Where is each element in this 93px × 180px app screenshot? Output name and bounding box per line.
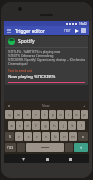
button[interactable]: c: [33, 132, 41, 141]
staticText: 16:42: [79, 22, 87, 26]
staticText: h: [53, 123, 56, 128]
staticText: <: [80, 145, 83, 150]
button[interactable]: e: [23, 110, 31, 119]
button[interactable]: TEST: [64, 29, 71, 33]
staticText: z: [18, 134, 20, 139]
button[interactable]: l: [77, 121, 85, 130]
button[interactable]: Back: [19, 155, 27, 163]
staticText: TEST: [64, 29, 71, 33]
staticText: Now playing %TICKER%: [8, 74, 56, 80]
button[interactable]: h: [50, 121, 58, 130]
button[interactable]: Space: [26, 143, 64, 152]
staticText: %TITLE% - %ARTIST% is playing now: [8, 50, 85, 54]
button[interactable]: m: [69, 132, 77, 141]
staticText: o: [75, 112, 78, 117]
button[interactable]: y: [49, 110, 56, 119]
button[interactable]: Home: [43, 155, 51, 163]
staticText: v: [45, 134, 47, 139]
staticText: c: [36, 134, 38, 139]
staticText: Trigger editor: [15, 28, 45, 34]
staticText: n: [63, 134, 66, 139]
button[interactable]: Now playing %TICKER%: [8, 74, 85, 83]
staticText: u: [59, 112, 62, 117]
button[interactable]: ?123: [5, 143, 16, 152]
staticText: d: [26, 123, 29, 128]
staticText: l: [81, 123, 82, 128]
button[interactable]: j: [59, 121, 67, 130]
staticText: w: [17, 112, 20, 117]
button[interactable]: Shift: [5, 132, 14, 141]
button[interactable]: Voice input: [6, 103, 11, 108]
button[interactable]: Enter: [74, 143, 88, 152]
staticText: f: [35, 123, 37, 128]
staticText: j: [63, 123, 64, 128]
staticText: Text to send out: [8, 69, 32, 73]
button[interactable]: z: [15, 132, 23, 141]
button[interactable]: b: [51, 132, 59, 141]
button[interactable]: Recents: [66, 155, 74, 163]
button[interactable]: Spotify: [5, 36, 88, 47]
button[interactable]: Run: [73, 27, 80, 34]
staticText: i: [68, 112, 69, 117]
staticText: S: [9, 134, 11, 139]
button[interactable]: u: [57, 110, 64, 119]
button[interactable]: t: [41, 110, 48, 119]
staticText: %TICKER% (Spotify) Ograniczony dostep --…: [8, 58, 85, 66]
button[interactable]: Navigation menu: [6, 28, 12, 34]
staticText: x: [82, 134, 84, 139]
button[interactable]: Save: [80, 27, 87, 34]
button[interactable]: p: [81, 110, 88, 119]
staticText: Now: [42, 103, 50, 108]
staticText: q: [8, 112, 11, 117]
button[interactable]: Backspace: [78, 132, 88, 141]
button[interactable]: s: [16, 121, 23, 130]
staticText: a: [10, 123, 13, 128]
staticText: g: [44, 123, 47, 128]
button[interactable]: w: [14, 110, 22, 119]
button[interactable]: g: [41, 121, 49, 130]
button[interactable]: f: [32, 121, 40, 130]
staticText: +: [83, 103, 86, 108]
staticText: s: [19, 123, 21, 128]
button[interactable]: n: [60, 132, 68, 141]
staticText: e: [26, 112, 29, 117]
button[interactable]: i: [65, 110, 72, 119]
button[interactable]: o: [73, 110, 80, 119]
staticText: ?123: [7, 146, 14, 150]
staticText: %TEXT% Odtwarza Ciemnokrag: [8, 54, 85, 58]
button[interactable]: d: [24, 121, 31, 130]
staticText: Spotify: [18, 38, 35, 45]
staticText: t: [44, 112, 46, 117]
button[interactable]: More options: [82, 103, 87, 108]
button[interactable]: v: [42, 132, 50, 141]
staticText: y: [52, 112, 54, 117]
button[interactable]: r: [32, 110, 40, 119]
staticText: x: [27, 134, 30, 139]
button[interactable]: a: [8, 121, 15, 130]
staticText: k: [71, 123, 74, 128]
button[interactable]: x: [24, 132, 32, 141]
button[interactable]: q: [5, 110, 13, 119]
staticText: p: [83, 112, 86, 117]
staticText: r: [35, 112, 37, 117]
staticText: b: [54, 134, 57, 139]
button[interactable]: k: [68, 121, 76, 130]
staticText: m: [71, 134, 75, 139]
